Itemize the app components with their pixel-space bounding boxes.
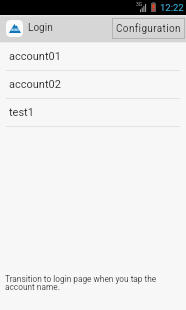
- staticText: test1: [9, 106, 34, 119]
- button[interactable]: account02: [0, 71, 186, 98]
- button[interactable]: App home: [6, 20, 23, 37]
- staticText: account02: [9, 78, 61, 91]
- staticText: 12:22: [160, 2, 184, 13]
- button[interactable]: Configuration: [112, 18, 185, 39]
- staticText: 3G: [136, 1, 143, 7]
- staticText: Transition to login page when you tap th…: [5, 274, 161, 292]
- button[interactable]: test1: [0, 99, 186, 126]
- staticText: account01: [9, 50, 61, 63]
- staticText: Configuration: [116, 23, 181, 35]
- button[interactable]: account01: [0, 43, 186, 70]
- staticText: Login: [28, 22, 53, 34]
